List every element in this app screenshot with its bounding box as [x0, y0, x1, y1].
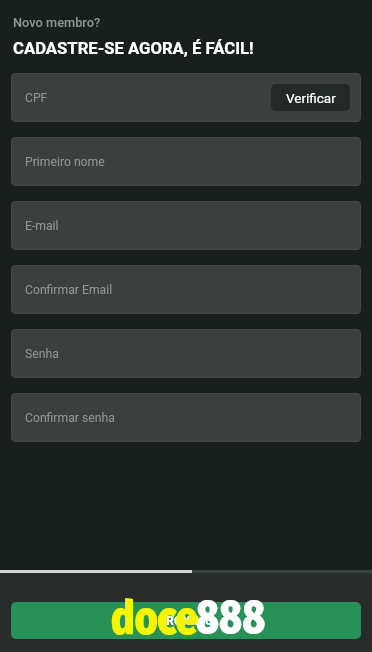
staticText: CADASTRE-SE AGORA, É FÁCIL!: [13, 39, 254, 59]
button[interactable]: Confirmar Email: [11, 265, 361, 314]
staticText: doce: [111, 590, 198, 648]
staticText: Senha: [25, 347, 59, 361]
button[interactable]: Primeiro nome: [11, 137, 361, 186]
button[interactable]: PRÓXIMO: [11, 602, 361, 639]
staticText: Confirmar Email: [25, 283, 113, 297]
button[interactable]: CPF: [11, 73, 361, 122]
staticText: Novo membro?: [13, 15, 101, 30]
button[interactable]: Verificar: [271, 84, 350, 111]
staticText: Confirmar senha: [25, 411, 115, 425]
staticText: Primeiro nome: [25, 155, 105, 169]
staticText: 888: [196, 590, 266, 645]
button[interactable]: Senha: [11, 329, 361, 378]
staticText: PRÓXIMO: [158, 613, 214, 628]
staticText: Verificar: [286, 90, 336, 106]
button[interactable]: E-mail: [11, 201, 361, 250]
button[interactable]: Confirmar senha: [11, 393, 361, 442]
staticText: CPF: [25, 91, 48, 105]
staticText: E-mail: [25, 219, 59, 233]
